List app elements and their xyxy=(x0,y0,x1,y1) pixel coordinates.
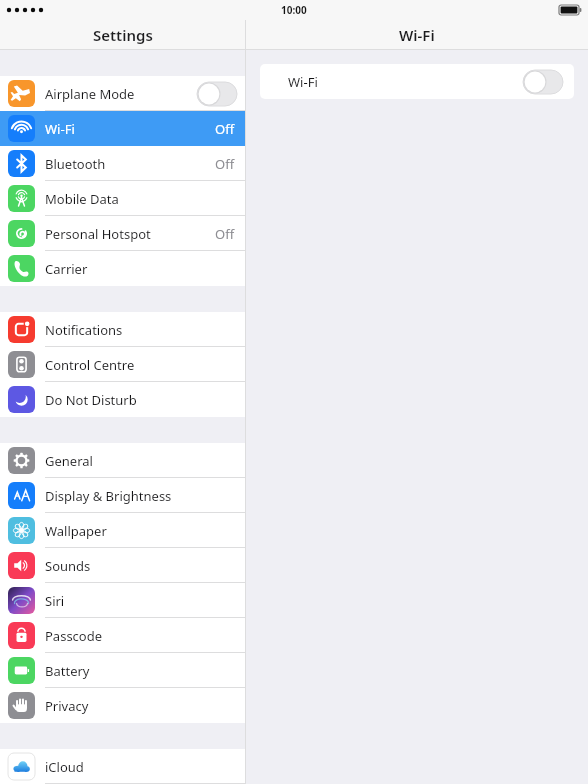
staticText: Siri xyxy=(45,592,65,610)
button[interactable]: Airplane Mode xyxy=(0,76,245,111)
button[interactable]: Carrier xyxy=(0,251,245,286)
staticText: Bluetooth xyxy=(45,155,106,173)
staticText: Off xyxy=(215,120,235,138)
button[interactable]: Mobile Data xyxy=(0,181,245,216)
button[interactable]: Battery xyxy=(0,653,245,688)
staticText: Control Centre xyxy=(45,356,135,374)
staticText: Do Not Disturb xyxy=(45,391,137,409)
button[interactable]: Wi-Fi xyxy=(0,111,245,146)
staticText: Sounds xyxy=(45,557,91,575)
staticText: iCloud xyxy=(45,758,84,776)
staticText: Personal Hotspot xyxy=(45,225,151,243)
button[interactable]: Notifications xyxy=(0,312,245,347)
button[interactable]: Toggle xyxy=(197,82,237,106)
button[interactable]: Toggle xyxy=(523,70,563,94)
staticText: 10:00 xyxy=(281,3,307,17)
button[interactable]: Bluetooth xyxy=(0,146,245,181)
staticText: Passcode xyxy=(45,627,103,645)
staticText: Carrier xyxy=(45,260,88,278)
staticText: Wallpaper xyxy=(45,522,107,540)
staticText: Settings xyxy=(93,25,153,45)
button[interactable]: iCloud xyxy=(0,749,245,784)
button[interactable]: Wallpaper xyxy=(0,513,245,548)
staticText: Off xyxy=(215,155,235,173)
staticText: Wi-Fi xyxy=(45,120,75,138)
staticText: Battery xyxy=(45,662,90,680)
staticText: Airplane Mode xyxy=(45,85,135,103)
staticText: Privacy xyxy=(45,697,89,715)
button[interactable]: Privacy xyxy=(0,688,245,723)
button[interactable]: Sounds xyxy=(0,548,245,583)
button[interactable]: Wi-Fi xyxy=(260,64,574,99)
staticText: General xyxy=(45,452,93,470)
staticText: Wi-Fi xyxy=(399,25,435,45)
staticText: Mobile Data xyxy=(45,190,119,208)
button[interactable]: Personal Hotspot xyxy=(0,216,245,251)
staticText: Display & Brightness xyxy=(45,487,172,505)
staticText: Notifications xyxy=(45,321,123,339)
button[interactable]: Control Centre xyxy=(0,347,245,382)
button[interactable]: Passcode xyxy=(0,618,245,653)
staticText: Off xyxy=(215,225,235,243)
button[interactable]: Siri xyxy=(0,583,245,618)
button[interactable]: General xyxy=(0,443,245,478)
button[interactable]: Do Not Disturb xyxy=(0,382,245,417)
staticText: Wi-Fi xyxy=(288,73,318,91)
button[interactable]: Display & Brightness xyxy=(0,478,245,513)
